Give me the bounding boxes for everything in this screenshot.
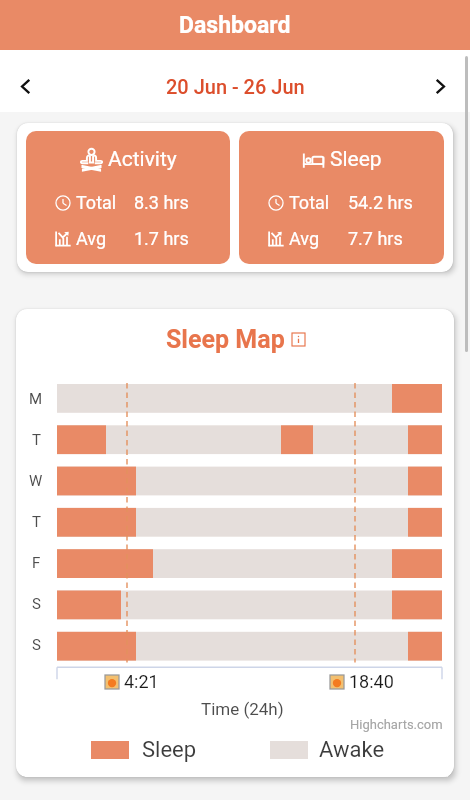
staticText: Avg <box>289 228 320 249</box>
staticText: Time (24h) <box>201 699 284 719</box>
staticText: T <box>32 431 41 449</box>
staticText: Highcharts.com <box>350 717 443 732</box>
staticText: 8.3 hrs <box>134 192 189 213</box>
staticText: 54.2 hrs <box>348 192 413 213</box>
button[interactable]: Info <box>292 333 305 346</box>
staticText: Avg <box>76 228 107 249</box>
staticText: W <box>29 472 43 490</box>
staticText: 1.7 hrs <box>134 228 189 249</box>
staticText: M <box>29 390 43 408</box>
staticText: Activity <box>108 147 177 172</box>
staticText: 7.7 hrs <box>348 228 403 249</box>
staticText: F <box>32 554 41 572</box>
staticText: Total <box>76 192 117 213</box>
staticText: Dashboard <box>179 12 291 39</box>
button[interactable]: Next week <box>422 68 458 104</box>
staticText: Sleep Map <box>166 325 285 354</box>
staticText: Sleep <box>330 147 382 172</box>
staticText: Awake <box>319 737 385 763</box>
button[interactable]: Activity <box>26 131 230 264</box>
staticText: Total <box>289 192 330 213</box>
staticText: S <box>32 595 41 613</box>
staticText: 4:21 <box>124 671 159 692</box>
button[interactable]: Sleep <box>239 131 444 264</box>
staticText: 20 Jun - 26 Jun <box>166 75 305 98</box>
staticText: S <box>32 636 41 654</box>
staticText: 18:40 <box>349 671 394 692</box>
staticText: T <box>32 513 41 531</box>
staticText: Sleep <box>142 737 197 763</box>
button[interactable]: Previous week <box>7 68 43 104</box>
